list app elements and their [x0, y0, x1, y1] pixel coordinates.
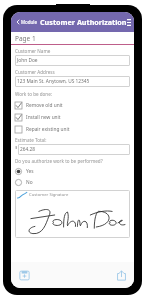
button[interactable]: Menu: [127, 15, 131, 29]
button[interactable]: Customer Signature: [15, 190, 130, 238]
staticText: 123 Main St. Anytown, US 12345: [17, 78, 90, 85]
staticText: Yes: [26, 168, 34, 175]
staticText: Customer Authorization: [40, 17, 127, 27]
staticText: Estimate Total:: [15, 137, 47, 143]
staticText: Repair existing unit: [26, 126, 70, 133]
button[interactable]: Install new unit: [15, 111, 130, 123]
staticText: Module: [21, 19, 38, 25]
button[interactable]: Module: [14, 17, 40, 27]
button[interactable]: Share: [113, 267, 129, 283]
button[interactable]: Save: [16, 267, 32, 283]
staticText: Work to be done:: [15, 91, 53, 97]
staticText: Customer Name: [15, 48, 51, 54]
staticText: Do you authorize work to be performed?: [15, 158, 103, 164]
button[interactable]: Remove old unit: [15, 99, 130, 111]
button[interactable]: John Doe: [15, 55, 130, 66]
staticText: No: [26, 179, 33, 186]
staticText: Install new unit: [26, 114, 61, 121]
staticText: 264.28: [20, 146, 36, 153]
staticText: Customer Address: [15, 69, 55, 75]
button[interactable]: Yes: [15, 166, 130, 177]
staticText: $: [15, 145, 18, 150]
button[interactable]: No: [15, 177, 130, 188]
button[interactable]: Repair existing unit: [15, 123, 130, 135]
button[interactable]: 123 Main St. Anytown, US 12345: [15, 76, 130, 87]
staticText: Page 1: [15, 34, 36, 43]
button[interactable]: 264.28: [18, 144, 130, 155]
staticText: John Doe: [17, 57, 38, 64]
staticText: Remove old unit: [26, 102, 63, 109]
staticText: Customer Signature: [29, 192, 69, 198]
